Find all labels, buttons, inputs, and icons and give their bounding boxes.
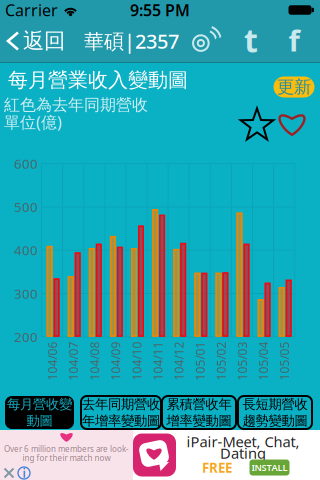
staticText: 104/11 <box>139 353 178 369</box>
staticText: 105/04 <box>244 353 283 369</box>
button[interactable]: 加入追蹤 <box>240 108 273 139</box>
staticText: 動圖 <box>26 412 52 429</box>
staticText: 400 <box>14 241 38 259</box>
staticText: 500 <box>14 198 38 216</box>
staticText: ing for their match now <box>22 453 110 463</box>
staticText: Dating <box>220 443 266 463</box>
staticText: 增率變動圖 <box>166 412 231 429</box>
staticText: 華碩|2357 <box>84 28 179 54</box>
staticText: 104/08 <box>75 353 114 369</box>
button[interactable]: 廣告資訊 <box>18 467 30 479</box>
button[interactable]: 分享到微博 <box>192 30 218 51</box>
staticText: i <box>22 465 25 480</box>
staticText: 每月營收變 <box>7 396 72 412</box>
staticText: 600 <box>14 155 38 172</box>
button[interactable]: 返回 <box>0 28 65 54</box>
button[interactable]: 更新 <box>273 76 314 97</box>
staticText: 104/09 <box>96 353 135 369</box>
staticText: FREE <box>202 459 232 476</box>
staticText: Over 6 million members are look- <box>4 444 129 454</box>
staticText: 105/02 <box>202 353 241 369</box>
staticText: iPair-Meet, Chat, <box>186 432 299 451</box>
staticText: 104/07 <box>54 353 93 369</box>
staticText: 年增率變動圖 <box>82 412 160 429</box>
staticText: 104/06 <box>33 353 72 369</box>
staticText: 105/05 <box>265 353 304 369</box>
staticText: 單位(億) <box>4 111 62 133</box>
staticText: 200 <box>14 328 38 346</box>
button[interactable]: 分享到 Facebook <box>288 20 299 59</box>
staticText: 每月營業收入變動圖 <box>8 68 188 92</box>
staticText: INSTALL <box>251 461 287 474</box>
staticText: f <box>288 20 299 59</box>
staticText: 趨勢變動圖 <box>242 412 307 429</box>
staticText: 累積營收年 <box>166 396 231 412</box>
staticText: 長短期營收 <box>242 396 307 412</box>
button[interactable]: INSTALL <box>249 459 289 475</box>
staticText: 105/03 <box>223 353 262 369</box>
staticText: 返回 <box>23 28 65 54</box>
staticText: 9:55 PM <box>130 0 190 21</box>
button[interactable]: 每月營收變 <box>5 396 74 429</box>
staticText: t <box>244 19 258 61</box>
staticText: 105/01 <box>181 353 220 369</box>
button[interactable]: 關閉廣告 <box>4 468 13 477</box>
staticText: 104/12 <box>160 353 199 369</box>
staticText: 104/10 <box>117 353 156 369</box>
staticText: Carrier <box>5 0 58 21</box>
button[interactable]: 去年同期營收 <box>81 396 161 429</box>
staticText: 300 <box>14 285 38 302</box>
button[interactable]: iPair-Meet, Chat, Dating 廣告 <box>0 430 320 480</box>
button[interactable]: 長短期營收 <box>238 396 312 429</box>
staticText: 去年同期營收 <box>82 396 160 412</box>
button[interactable]: 分享到 Twitter <box>244 19 258 61</box>
staticText: 紅色為去年同期營收 <box>4 95 148 115</box>
staticText: 更新 <box>277 76 311 98</box>
button[interactable]: 加入最愛 <box>279 112 305 136</box>
button[interactable]: 累積營收年 <box>162 396 236 429</box>
